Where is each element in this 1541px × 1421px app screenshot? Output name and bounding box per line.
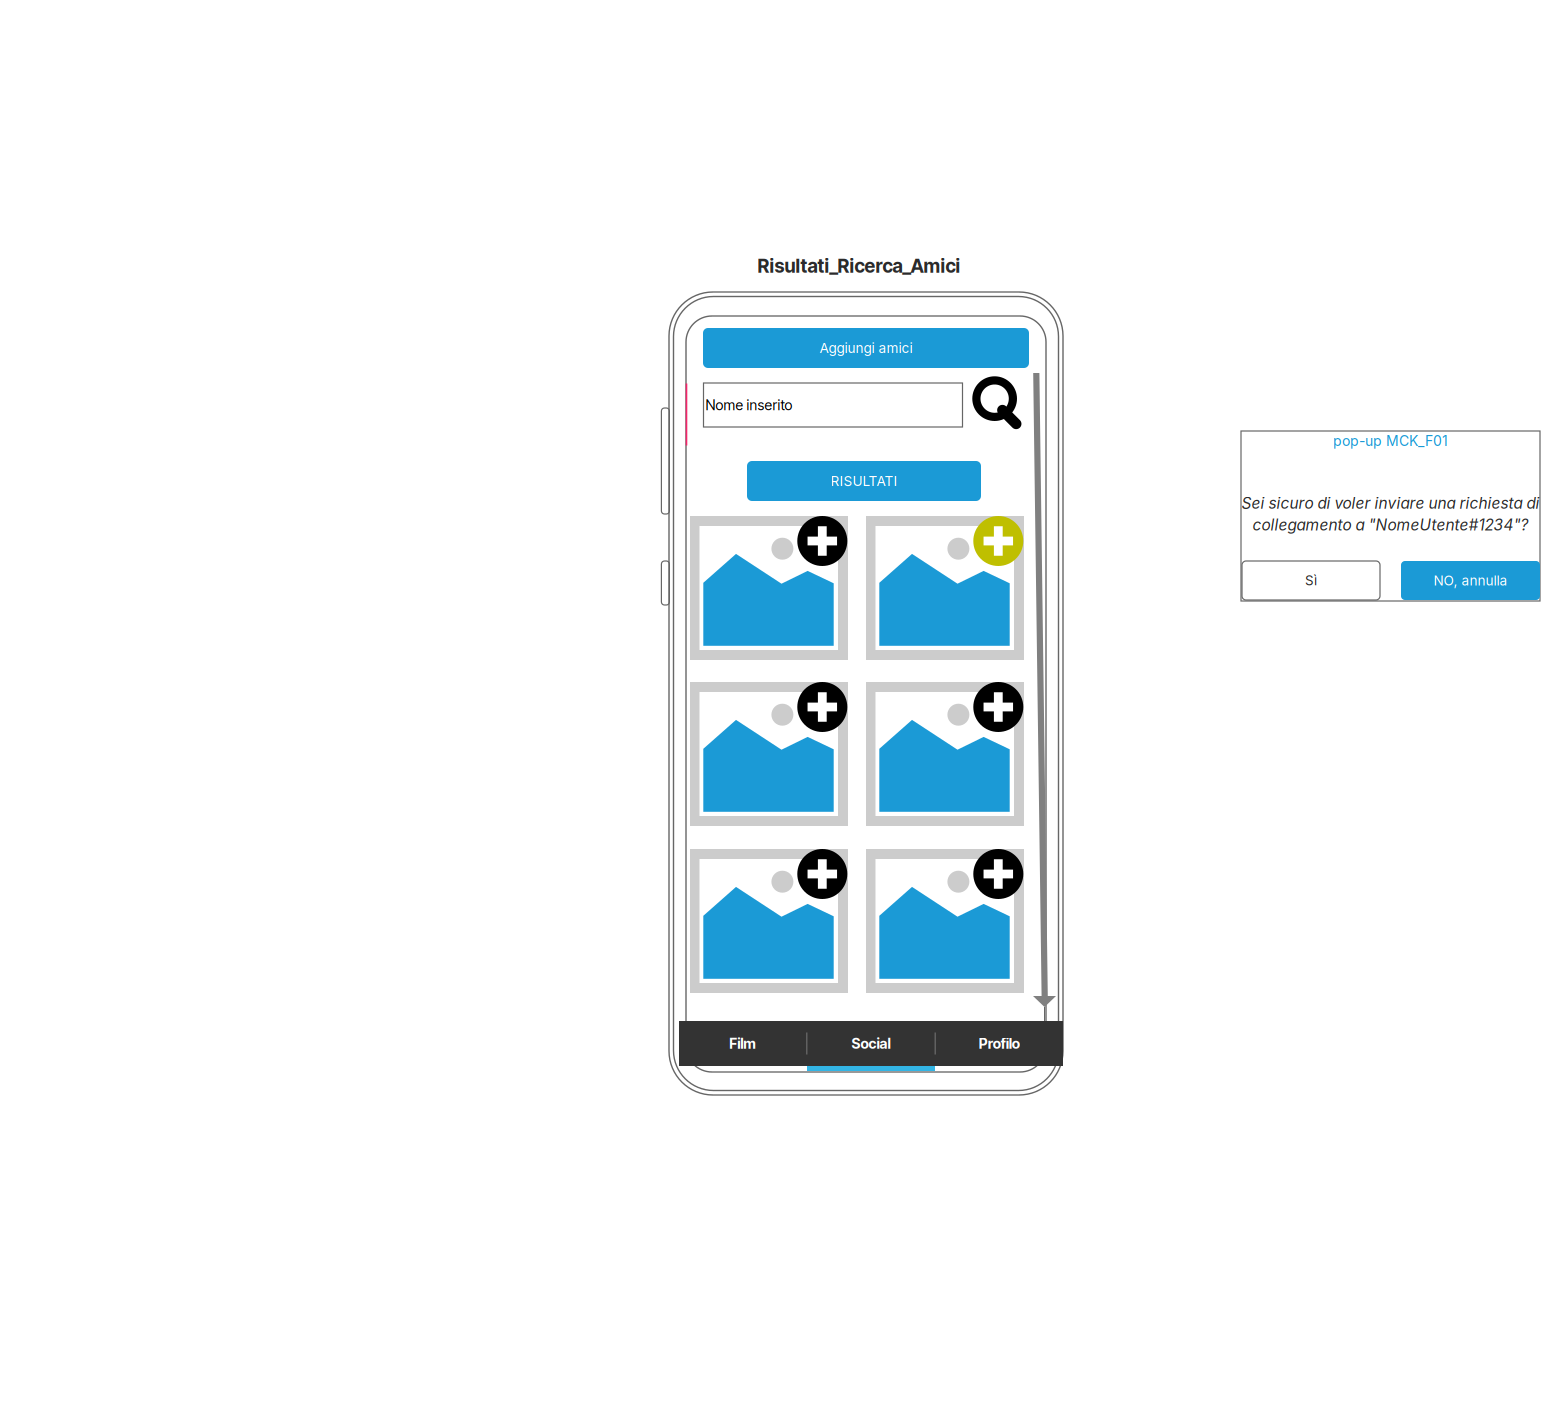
staticText: pop-up MCK_F01 bbox=[1333, 432, 1448, 449]
button[interactable]: Aggiungi amico bbox=[866, 516, 1024, 660]
button[interactable]: NO, annulla bbox=[1401, 561, 1540, 600]
staticText: Profilo bbox=[979, 1035, 1020, 1052]
staticText: Sei sicuro di voler inviare una richiest… bbox=[1241, 494, 1539, 512]
button[interactable]: Aggiungi amico bbox=[690, 682, 848, 826]
button[interactable]: Aggiungi amico bbox=[866, 682, 1024, 826]
button[interactable]: Film bbox=[679, 1021, 806, 1066]
staticText: NO, annulla bbox=[1433, 572, 1507, 589]
button[interactable]: Aggiungi amico bbox=[690, 849, 848, 993]
staticText: Sì bbox=[1305, 572, 1317, 588]
staticText: Nome inserito bbox=[705, 396, 792, 413]
button[interactable]: Aggiungi amico bbox=[866, 849, 1024, 993]
staticText: Social bbox=[851, 1035, 890, 1052]
staticText: Risultati_Ricerca_Amici bbox=[757, 255, 960, 277]
button[interactable]: Nome inserito bbox=[703, 383, 962, 427]
button[interactable]: Aggiungi amici bbox=[703, 328, 1029, 368]
button[interactable]: Cerca bbox=[972, 376, 1028, 432]
button[interactable]: Profilo bbox=[936, 1021, 1063, 1066]
staticText: Film bbox=[729, 1035, 756, 1052]
button[interactable]: Social bbox=[807, 1021, 935, 1066]
staticText: collegamento a "NomeUtente#1234"? bbox=[1252, 515, 1528, 534]
staticText: Aggiungi amici bbox=[819, 340, 912, 356]
button[interactable]: Aggiungi amico bbox=[690, 516, 848, 660]
staticText: RISULTATI bbox=[830, 473, 897, 489]
button[interactable]: RISULTATI bbox=[747, 461, 981, 501]
button[interactable]: Sì bbox=[1242, 561, 1380, 600]
